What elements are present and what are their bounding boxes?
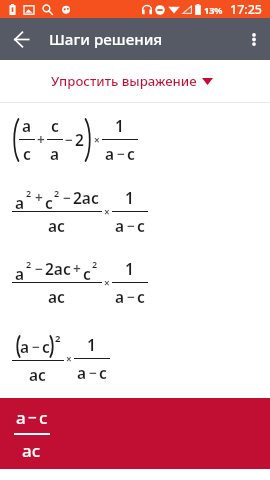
staticText: 2 (55, 332, 61, 345)
staticText: ac (48, 215, 65, 236)
staticText: c (39, 406, 48, 429)
staticText: c (127, 143, 135, 164)
staticText: 2 (75, 129, 84, 150)
button[interactable]: a (0, 398, 270, 469)
staticText: Шаги решения (49, 29, 163, 50)
staticText: 1 (115, 115, 124, 136)
staticText: a (115, 215, 125, 236)
staticText: − (127, 216, 135, 235)
staticText: + (73, 259, 81, 278)
button[interactable]: a (0, 318, 270, 398)
staticText: 1 (125, 258, 134, 279)
button[interactable]: Упростить выражение (0, 60, 270, 102)
staticText: a (77, 362, 87, 383)
button[interactable]: a (0, 175, 270, 247)
staticText: c (23, 143, 31, 164)
staticText: × (66, 352, 72, 366)
staticText: c (45, 192, 53, 213)
staticText: ac (22, 439, 41, 462)
staticText: 1 (87, 334, 96, 355)
staticText: − (28, 407, 37, 428)
staticText: − (127, 287, 135, 306)
staticText: 2 (26, 258, 32, 270)
staticText: 13% (204, 4, 223, 16)
staticText: a (115, 286, 125, 307)
staticText: c (137, 215, 145, 236)
staticText: 1 (125, 187, 134, 208)
staticText: − (117, 144, 125, 163)
staticText: + (35, 188, 43, 207)
staticText: 2ac (45, 258, 71, 279)
staticText: × (94, 133, 100, 147)
staticText: 17:25 (230, 1, 263, 18)
staticText: × (104, 205, 110, 219)
staticText: Упростить выражение (51, 72, 197, 90)
staticText: 2 (54, 187, 60, 199)
button[interactable]: a (0, 103, 270, 175)
staticText: 2 (92, 258, 98, 270)
staticText: a (22, 115, 32, 136)
staticText: a (20, 336, 30, 357)
staticText: a (15, 263, 25, 284)
staticText: − (65, 130, 73, 149)
staticText: − (32, 337, 40, 356)
staticText: a (105, 143, 115, 164)
staticText: c (83, 263, 91, 284)
staticText: a (15, 192, 25, 213)
staticText: × (104, 276, 110, 290)
staticText: c (42, 336, 50, 357)
button[interactable]: Back (0, 18, 42, 60)
staticText: c (99, 362, 107, 383)
staticText: 2ac (73, 187, 99, 208)
button[interactable]: More options (237, 18, 270, 60)
staticText: a (50, 143, 60, 164)
staticText: + (37, 130, 45, 149)
staticText: c (51, 115, 59, 136)
staticText: c (137, 286, 145, 307)
staticText: a (16, 406, 26, 429)
staticText: 2 (26, 187, 32, 199)
staticText: ac (48, 286, 65, 307)
staticText: ac (29, 364, 46, 385)
staticText: − (35, 259, 43, 278)
staticText: − (63, 188, 71, 207)
button[interactable]: a (0, 247, 270, 318)
staticText: − (89, 363, 97, 382)
